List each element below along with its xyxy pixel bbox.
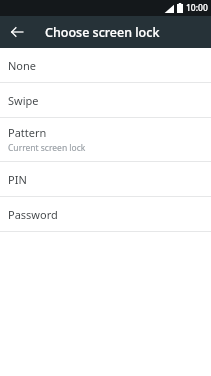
staticText: Swipe <box>8 93 39 108</box>
staticText: PIN <box>8 172 27 187</box>
staticText: Current screen lock <box>8 142 86 154</box>
staticText: None <box>8 58 37 73</box>
button[interactable]: Pattern <box>0 118 211 161</box>
button[interactable]: Swipe <box>0 83 211 117</box>
button[interactable]: None <box>0 48 211 82</box>
staticText: 10:00 <box>186 2 208 14</box>
button[interactable]: PIN <box>0 162 211 196</box>
button[interactable]: Navigate up <box>7 22 27 42</box>
staticText: Choose screen lock <box>45 24 160 41</box>
staticText: Password <box>8 207 58 222</box>
button[interactable]: Password <box>0 197 211 231</box>
staticText: Pattern <box>8 125 47 140</box>
